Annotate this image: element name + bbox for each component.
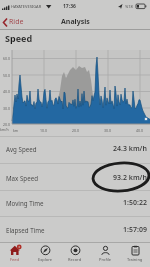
staticText: Ride bbox=[9, 17, 24, 27]
staticText: Explore bbox=[38, 257, 53, 262]
staticText: 50.0 bbox=[3, 73, 10, 78]
button[interactable]: Max Speed bbox=[0, 173, 150, 182]
staticText: 24.3 km/h bbox=[113, 144, 147, 153]
button[interactable]: Ride bbox=[0, 17, 24, 27]
staticText: Training bbox=[127, 257, 143, 262]
button[interactable]: Training bbox=[120, 242, 150, 267]
button[interactable]: Feed bbox=[0, 242, 30, 267]
staticText: 1:50:22 bbox=[123, 198, 147, 207]
staticText: Speed bbox=[5, 32, 33, 44]
staticText: %18 bbox=[125, 4, 133, 9]
staticText: 30.0 bbox=[104, 128, 111, 133]
staticText: Analysis bbox=[61, 17, 90, 27]
button[interactable]: Profile bbox=[90, 242, 120, 267]
staticText: km bbox=[13, 128, 19, 133]
staticText: 40.0 bbox=[3, 89, 10, 94]
staticText: 93.2 km/h bbox=[113, 173, 147, 182]
staticText: 30.0 bbox=[3, 106, 10, 111]
button[interactable]: Elapsed Time bbox=[0, 225, 150, 234]
staticText: 17:36 bbox=[63, 3, 76, 10]
staticText: 20.0 bbox=[3, 122, 10, 127]
staticText: km/h bbox=[0, 127, 9, 132]
staticText: 10.0 bbox=[40, 128, 47, 133]
button[interactable]: Record bbox=[60, 242, 90, 267]
button[interactable]: Avg Speed bbox=[0, 144, 150, 153]
staticText: Avg Speed bbox=[6, 145, 37, 153]
staticText: Record bbox=[68, 257, 82, 262]
staticText: Profile bbox=[99, 257, 112, 262]
staticText: Moving Time bbox=[6, 199, 44, 207]
button[interactable]: Explore bbox=[30, 242, 60, 267]
staticText: Feed bbox=[10, 257, 20, 262]
staticText: 40.0 bbox=[136, 128, 143, 133]
staticText: Elapsed Time bbox=[6, 226, 45, 234]
staticText: 60.0 bbox=[3, 56, 10, 61]
staticText: 20.0 bbox=[72, 128, 79, 133]
staticText: 1:57:09 bbox=[123, 225, 147, 234]
staticText: HAYATEVESIGAR bbox=[11, 4, 42, 9]
button[interactable]: Moving Time bbox=[0, 198, 150, 207]
staticText: Max Speed bbox=[6, 174, 38, 182]
